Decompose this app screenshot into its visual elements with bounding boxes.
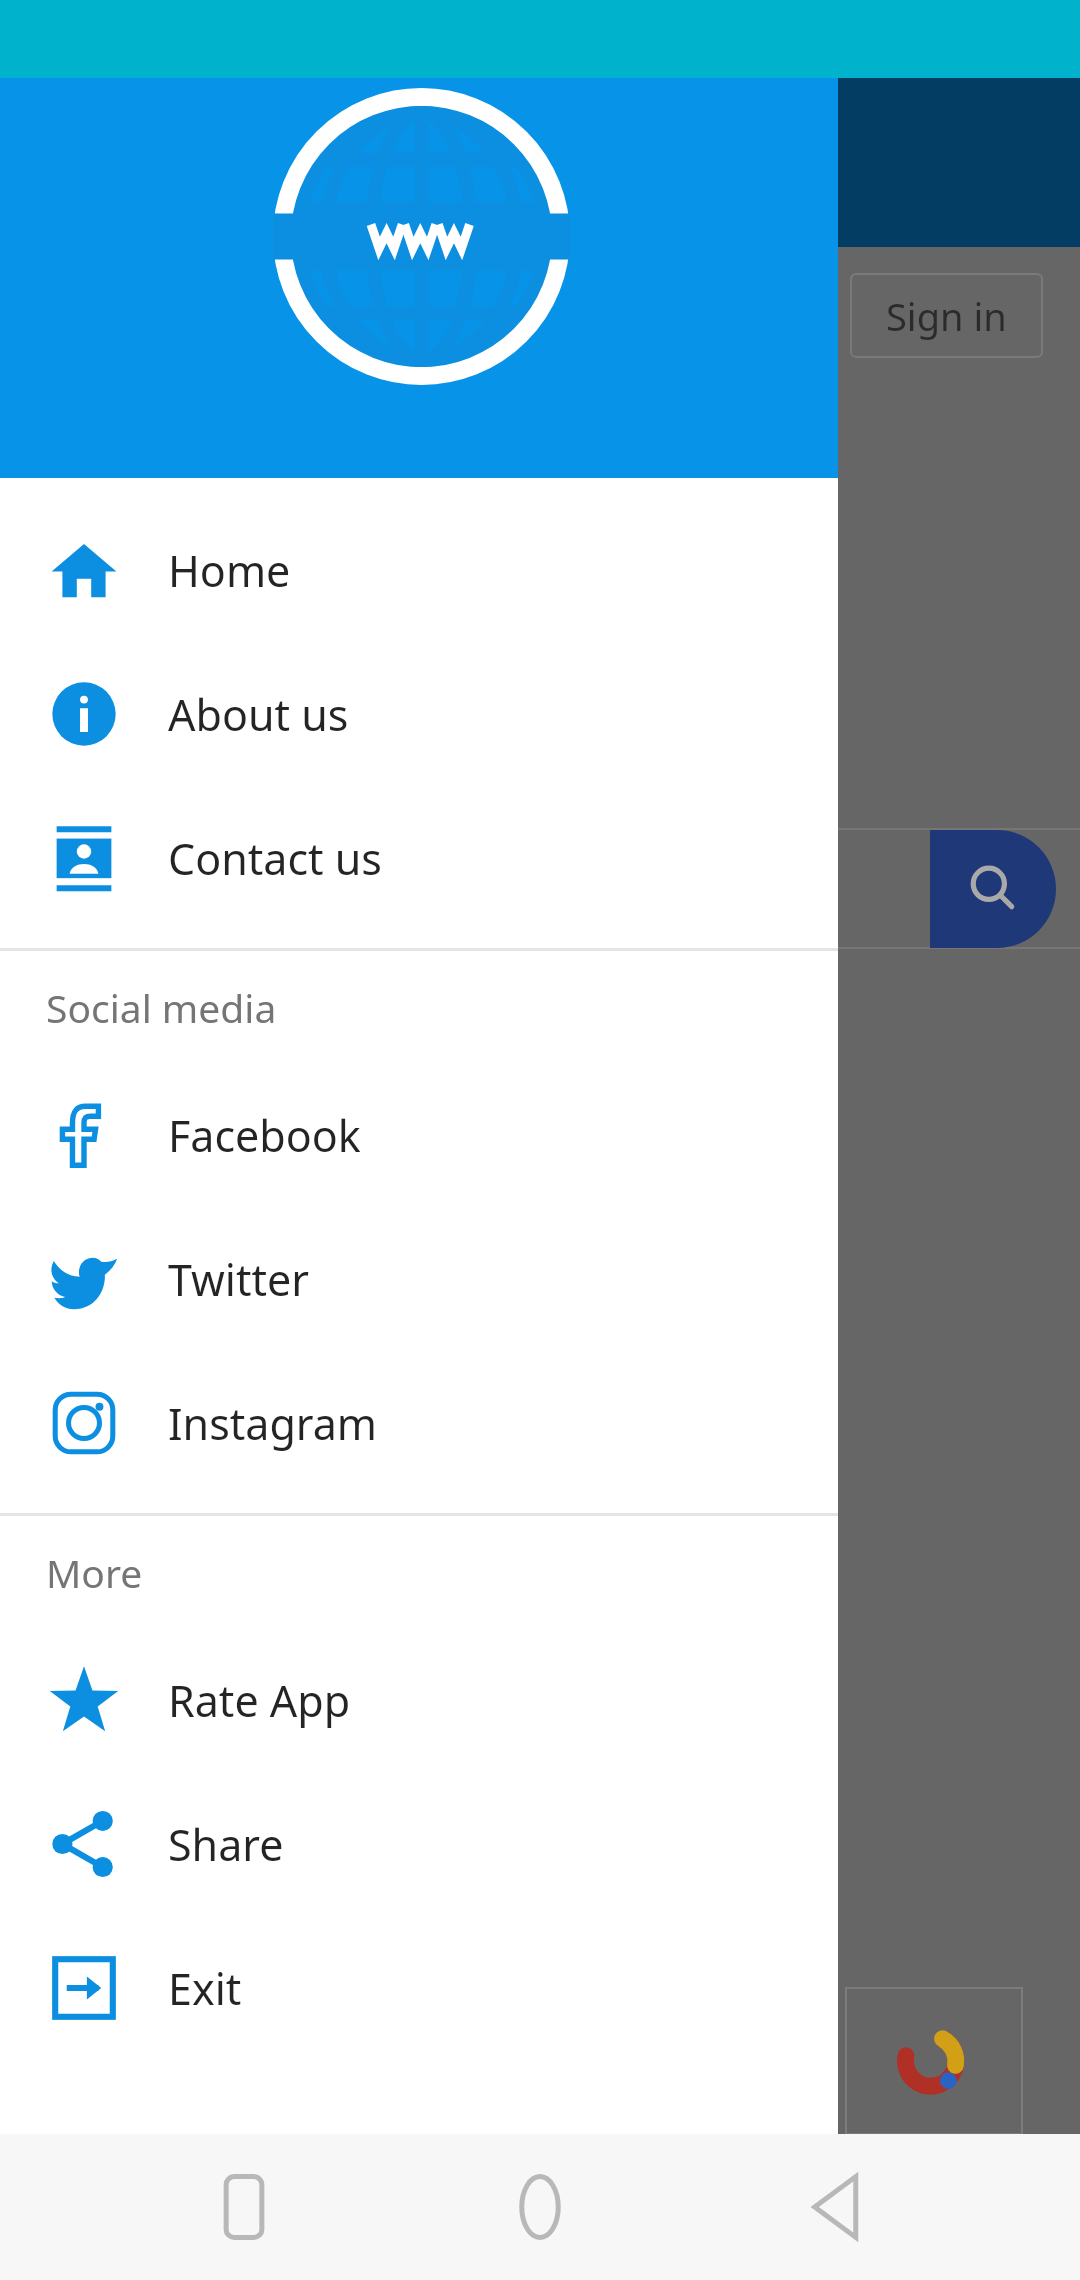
staticText: Twitter <box>168 1250 309 1309</box>
button[interactable]: Home <box>0 498 838 642</box>
staticText: Exit <box>168 1959 242 2018</box>
button[interactable]: Rate App <box>0 1628 838 1772</box>
button[interactable]: Facebook <box>0 1063 838 1207</box>
button[interactable]: Back <box>798 2169 874 2245</box>
button[interactable]: Sign in <box>850 273 1043 358</box>
staticText: Facebook <box>168 1106 361 1165</box>
staticText: About us <box>168 685 349 744</box>
button[interactable]: Instagram <box>0 1351 838 1495</box>
button[interactable]: Exit <box>0 1916 838 2060</box>
staticText: Home <box>168 541 291 600</box>
staticText: Rate App <box>168 1671 351 1730</box>
button[interactable]: About us <box>0 642 838 786</box>
staticText: Share <box>168 1815 284 1874</box>
button[interactable]: Recents <box>206 2169 282 2245</box>
button[interactable] <box>845 1987 1023 2135</box>
staticText: Social media <box>46 981 277 1034</box>
button[interactable]: Share <box>0 1772 838 1916</box>
staticText: More <box>46 1546 143 1599</box>
staticText: Contact us <box>168 829 382 888</box>
staticText: Sign in <box>886 290 1007 342</box>
button[interactable]: Twitter <box>0 1207 838 1351</box>
button[interactable]: Contact us <box>0 786 838 930</box>
button[interactable]: Search <box>930 830 1056 948</box>
staticText: Instagram <box>168 1394 378 1453</box>
button[interactable]: Home <box>502 2169 578 2245</box>
